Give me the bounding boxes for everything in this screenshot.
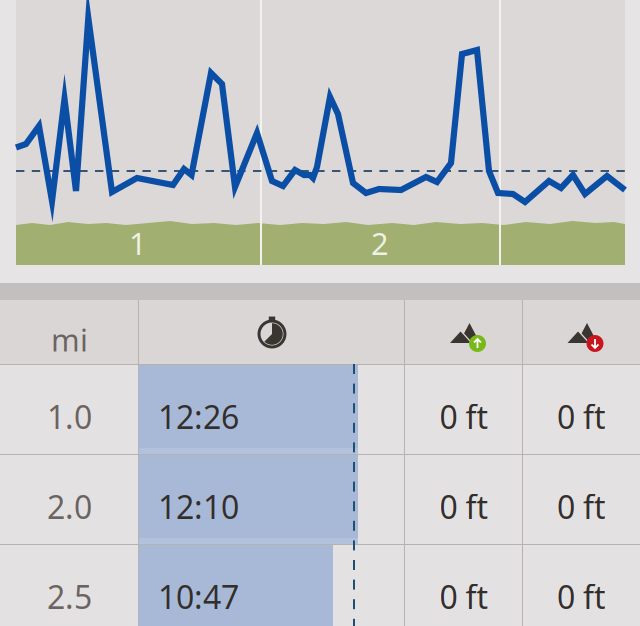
- button[interactable]: 2.5: [0, 0, 640, 626]
- staticText: 10:47: [158, 575, 239, 618]
- button[interactable]: 1.0: [0, 0, 640, 626]
- staticText: 1.0: [47, 395, 92, 438]
- staticText: 0 ft: [557, 575, 606, 618]
- staticText: 12:10: [158, 485, 239, 528]
- staticText: 12:26: [158, 395, 239, 438]
- staticText: 2.5: [47, 575, 92, 618]
- staticText: 0 ft: [439, 575, 488, 618]
- staticText: 0 ft: [439, 395, 488, 438]
- staticText: 2.0: [47, 485, 92, 528]
- staticText: 2: [371, 223, 389, 263]
- staticText: mi: [51, 319, 88, 360]
- staticText: 0 ft: [557, 395, 606, 438]
- button[interactable]: Split time: [0, 0, 640, 626]
- button[interactable]: Elevation loss: [0, 0, 640, 626]
- staticText: 0 ft: [557, 485, 606, 528]
- button[interactable]: mi: [0, 0, 139, 65]
- button[interactable]: Elevation gain: [0, 0, 640, 626]
- staticText: 1: [129, 223, 147, 263]
- staticText: 0 ft: [439, 485, 488, 528]
- button[interactable]: 2.0: [0, 0, 640, 626]
